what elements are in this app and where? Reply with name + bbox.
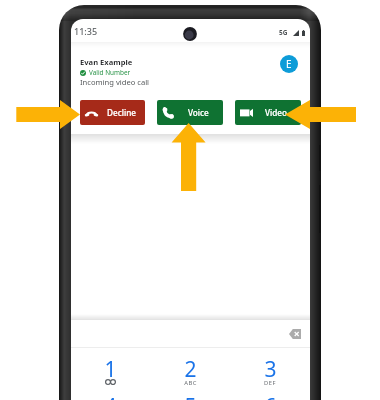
button[interactable]: Decline xyxy=(80,100,145,125)
staticText: 1 xyxy=(104,355,117,384)
staticText: Incoming video call xyxy=(80,77,150,87)
staticText: Voice xyxy=(188,107,209,118)
button[interactable]: Voice xyxy=(157,100,223,125)
button[interactable]: 6 xyxy=(230,392,310,400)
button[interactable]: 3 xyxy=(230,355,310,392)
button[interactable]: Backspace xyxy=(286,326,304,342)
button[interactable]: Video xyxy=(235,100,301,125)
staticText: 2 xyxy=(184,355,197,384)
staticText: 11:35 xyxy=(74,25,98,37)
button[interactable]: 5 xyxy=(150,392,230,400)
staticText: 3 xyxy=(264,355,277,384)
staticText: 5 xyxy=(184,392,197,400)
staticText: ABC xyxy=(184,379,197,387)
button[interactable]: 1 xyxy=(71,355,150,390)
staticText: E xyxy=(286,57,292,71)
button[interactable]: 2 xyxy=(150,355,230,392)
staticText: 6 xyxy=(264,392,277,400)
staticText: 4 xyxy=(104,392,117,400)
staticText: DEF xyxy=(264,379,276,387)
button[interactable]: E xyxy=(280,55,298,73)
staticText: 5G xyxy=(279,28,288,37)
staticText: Decline xyxy=(107,107,136,118)
staticText: Video xyxy=(265,107,288,118)
button[interactable]: 4 xyxy=(71,392,150,400)
staticText: Valid Number xyxy=(89,68,131,77)
staticText: Evan Example xyxy=(80,57,133,67)
